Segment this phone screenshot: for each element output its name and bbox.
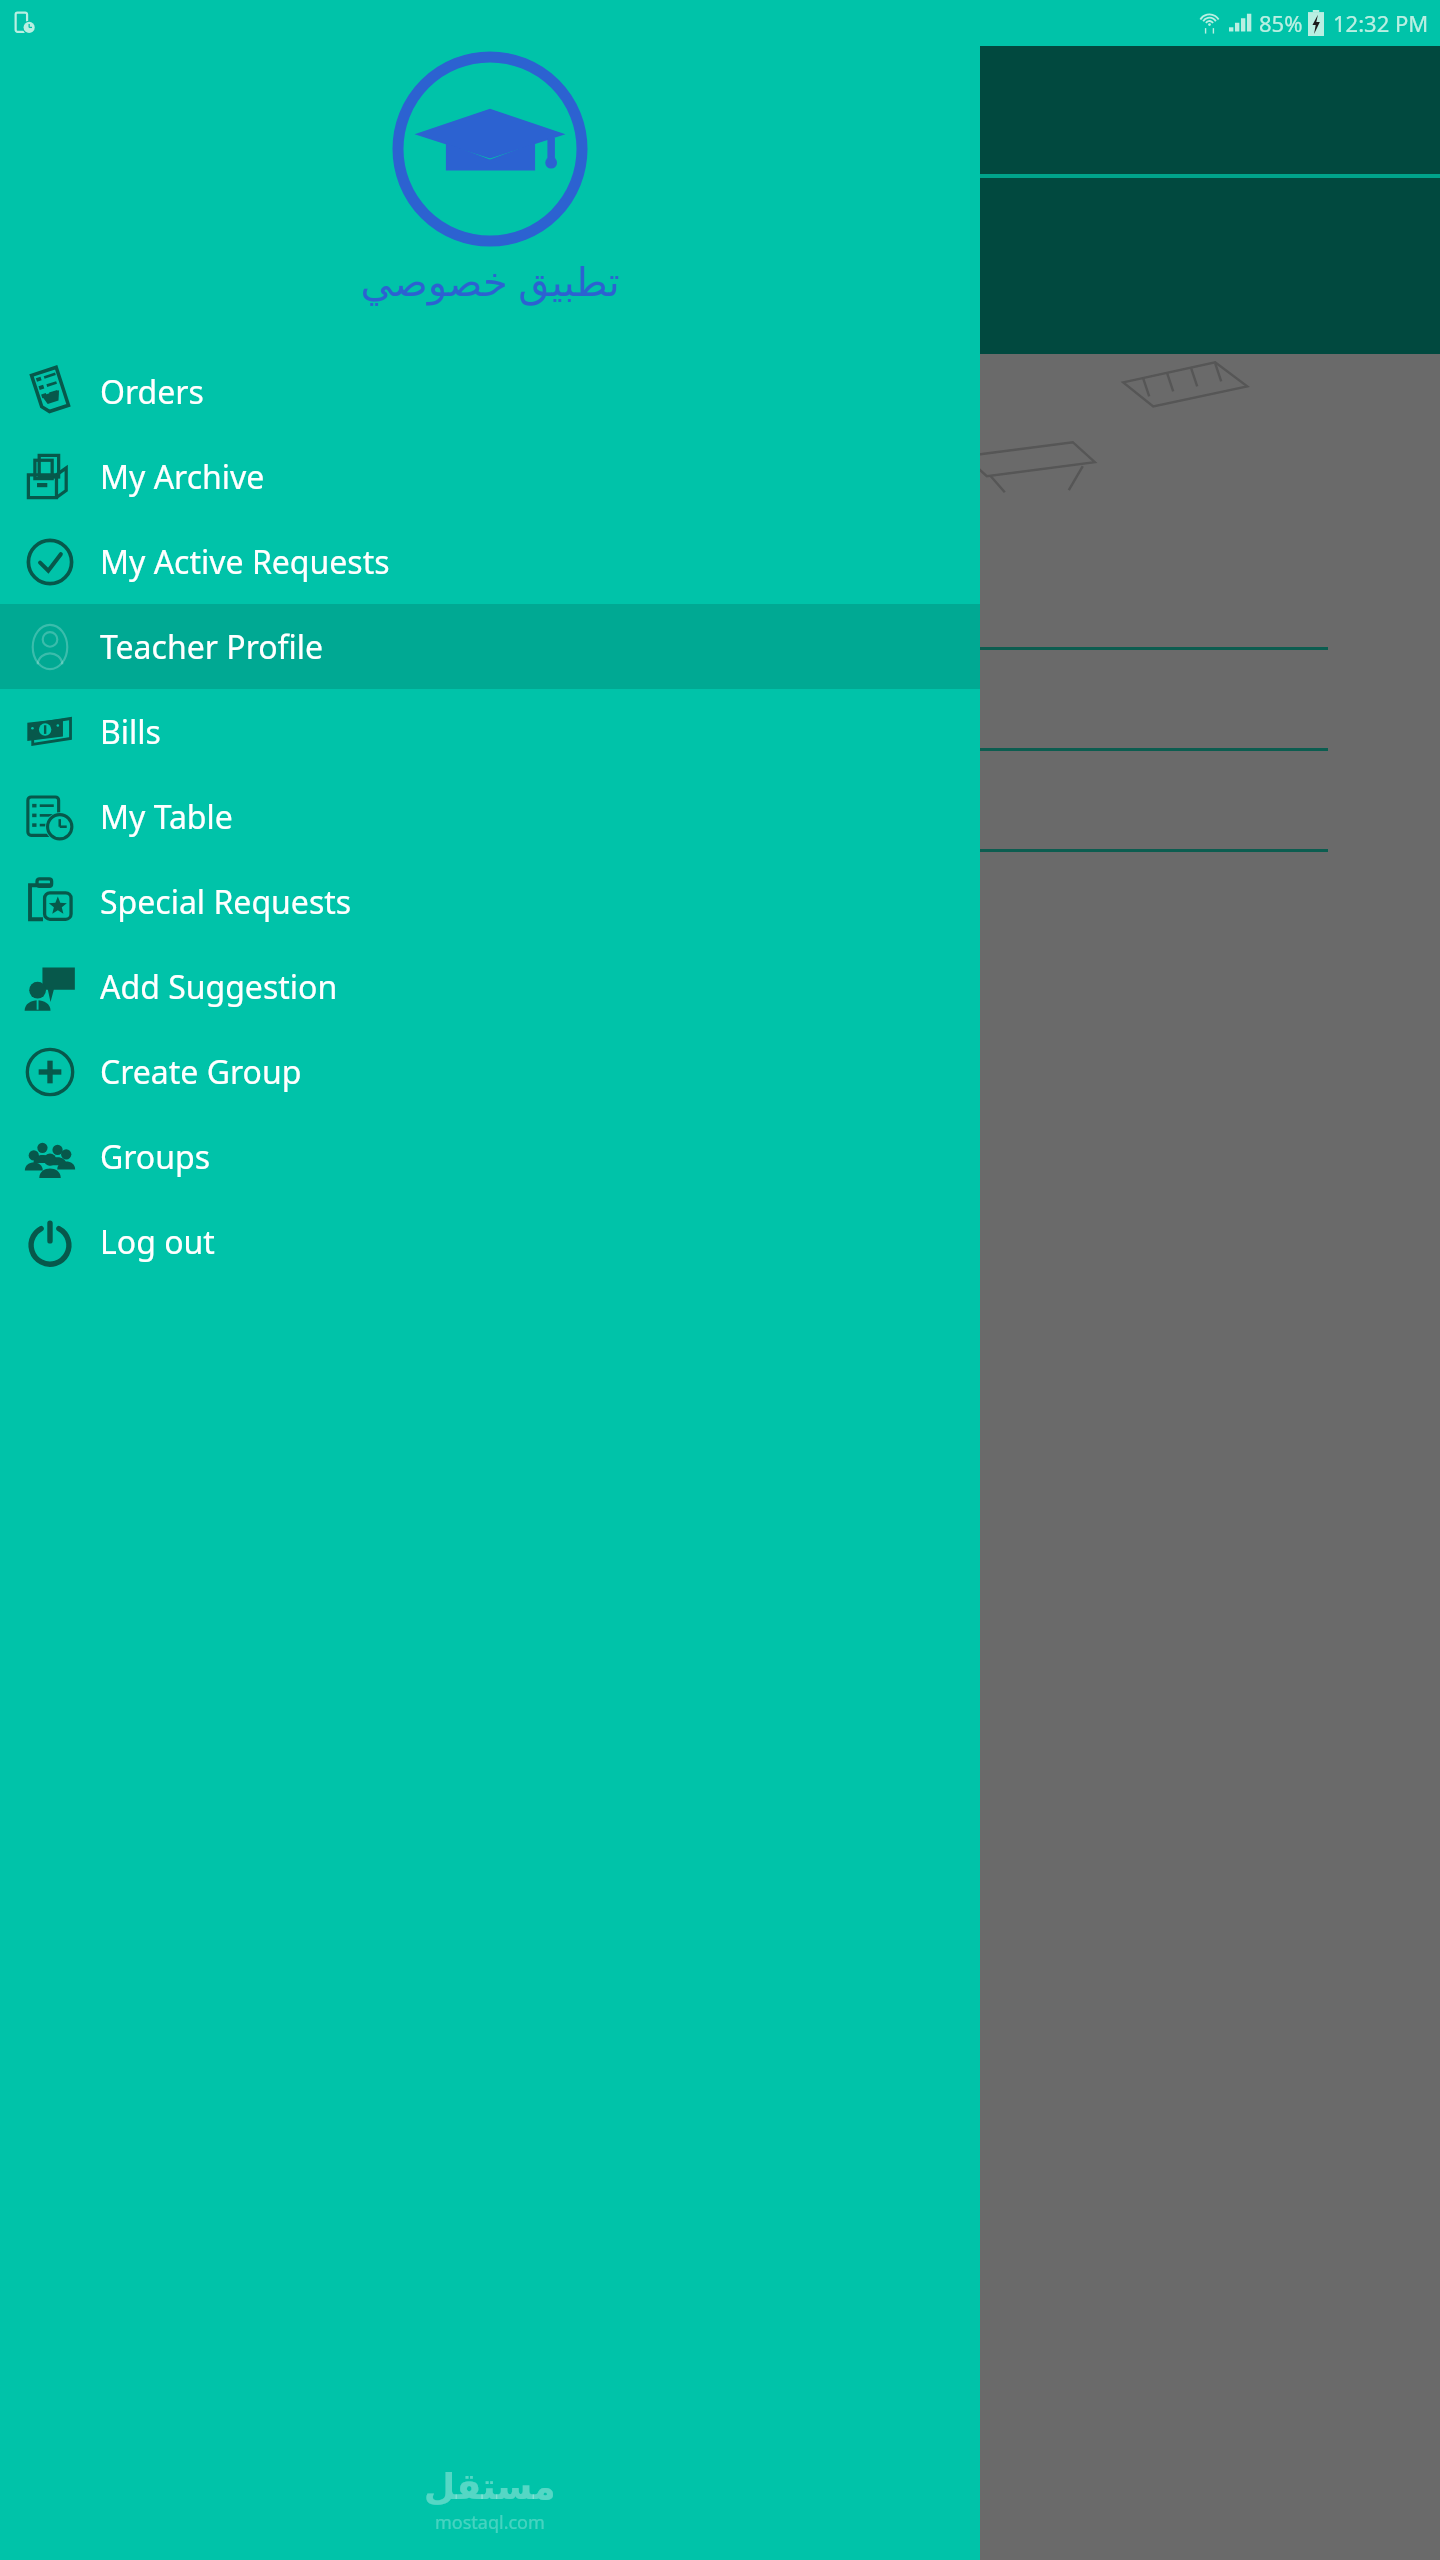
staticText: SCIENCE AND APPLICATIONS	[152, 482, 349, 557]
staticText: My Active Requests	[100, 540, 390, 584]
button[interactable]: Create Group	[0, 1029, 980, 1114]
button[interactable]: Teacher Profile	[0, 604, 980, 689]
staticText: mostaql.com	[435, 2510, 545, 2535]
staticText: My Archive	[100, 455, 265, 499]
button[interactable]: Bills	[0, 689, 980, 774]
button[interactable]: Groups	[0, 1114, 980, 1199]
staticText: Create Group	[100, 1050, 302, 1094]
staticText: Orders	[100, 370, 204, 414]
staticText: 12:32 PM	[1333, 8, 1429, 38]
staticText: 85%	[1259, 8, 1303, 38]
other: Alarm	[12, 10, 38, 36]
staticText: Special Requests	[100, 880, 352, 924]
button[interactable]: My Table	[0, 774, 980, 859]
staticText: مستقل	[424, 2466, 556, 2508]
staticText: Teacher Profile	[100, 625, 324, 669]
staticText: Log out	[100, 1220, 215, 1264]
button[interactable]: Log out	[0, 1199, 980, 1284]
staticText: Bills	[100, 710, 161, 754]
button[interactable]: Special Requests	[0, 859, 980, 944]
button[interactable]: My Active Requests	[0, 519, 980, 604]
staticText: تطبيق خصوصي	[360, 253, 620, 307]
staticText: Add Suggestion	[100, 965, 338, 1009]
staticText: Groups	[100, 1135, 211, 1179]
button[interactable]: Orders	[0, 349, 980, 434]
staticText: My Table	[100, 795, 233, 839]
button[interactable]: My Archive	[0, 434, 980, 519]
button[interactable]: Add Suggestion	[0, 944, 980, 1029]
